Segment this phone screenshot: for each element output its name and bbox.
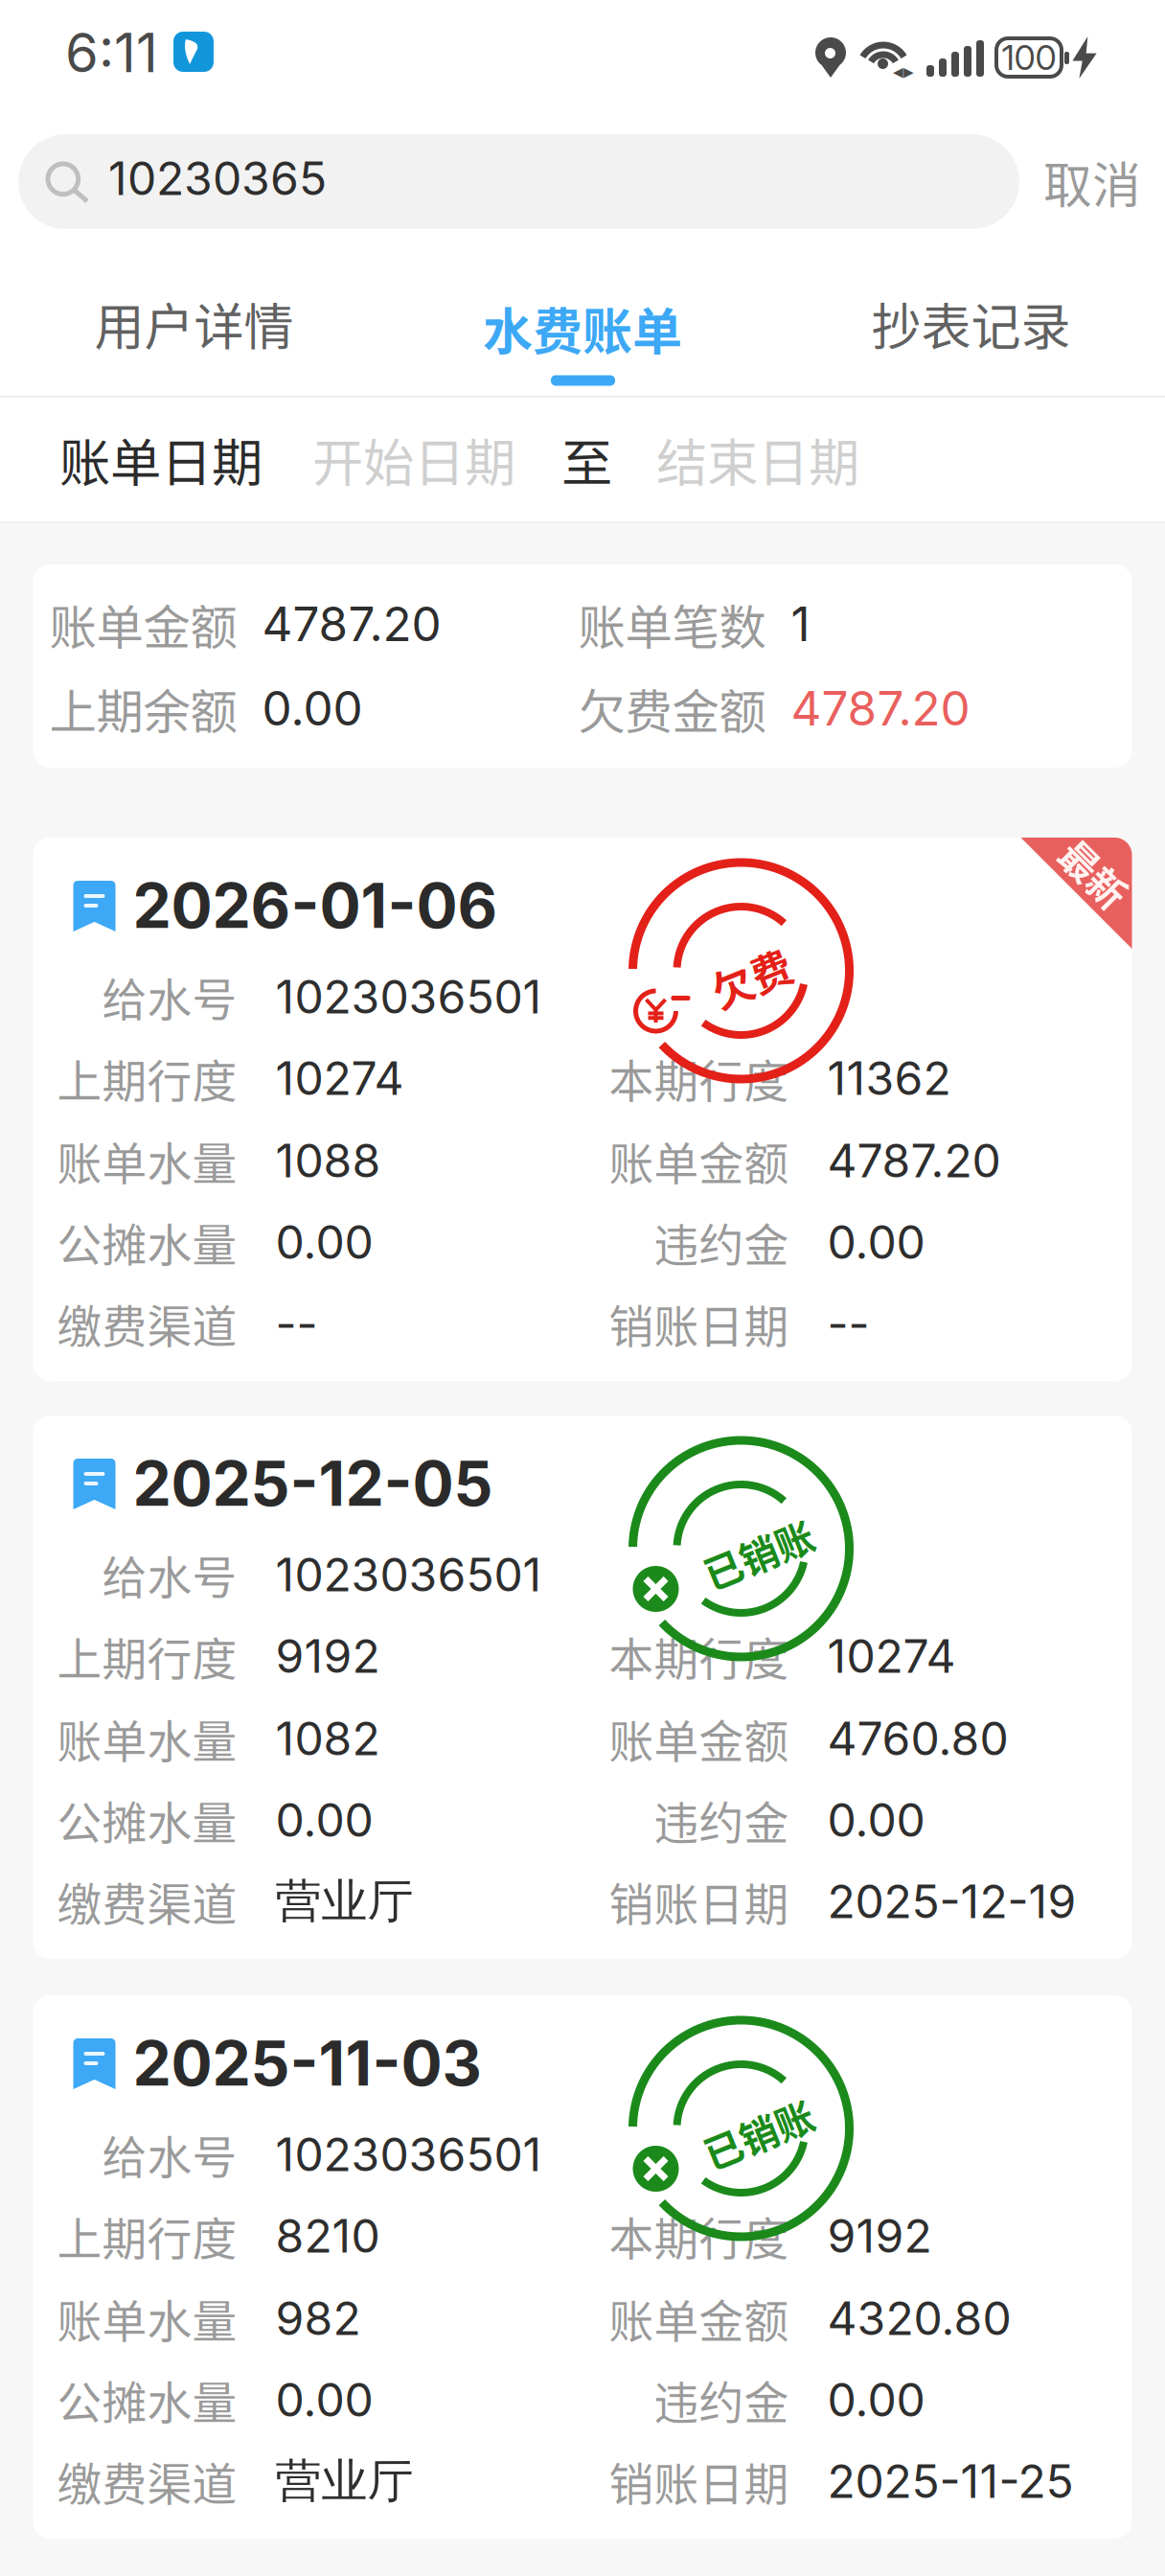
staticText: 公摊水量 — [57, 2367, 237, 2432]
staticText: 欠费 — [710, 948, 793, 1007]
staticText: 9192 — [275, 1628, 380, 1684]
staticText: 至 — [561, 423, 612, 497]
staticText: 本期行度 — [609, 2203, 789, 2268]
staticText: 0.00 — [262, 680, 363, 737]
button[interactable]: 抄表记录 — [777, 251, 1165, 396]
staticText: 0.00 — [827, 1792, 925, 1848]
staticText: 公摊水量 — [57, 1210, 237, 1274]
button[interactable]: 用户详情 — [0, 251, 388, 396]
staticText: 账单金额 — [49, 590, 237, 658]
staticText: 缴费渠道 — [57, 2449, 237, 2514]
staticText: 给水号 — [102, 2122, 237, 2187]
staticText: 11362 — [827, 1050, 951, 1106]
staticText: 销账日期 — [609, 1869, 789, 1934]
staticText: 抄表记录 — [871, 287, 1071, 360]
staticText: 账单水量 — [57, 2286, 237, 2351]
staticText: 销账日期 — [609, 1291, 789, 1356]
staticText: 上期行度 — [57, 1046, 237, 1111]
staticText: 4787.20 — [791, 680, 970, 737]
staticText: 销账日期 — [609, 2449, 789, 2514]
staticText: 982 — [275, 2290, 361, 2346]
staticText: 6:11 — [65, 20, 158, 85]
staticText: 用户详情 — [94, 287, 294, 360]
button[interactable]: 10230365 — [18, 134, 1019, 229]
staticText: 1023036501 — [275, 1547, 542, 1602]
staticText: 给水号 — [102, 964, 237, 1029]
button[interactable]: 结束日期 — [612, 423, 859, 497]
staticText: 缴费渠道 — [57, 1869, 237, 1934]
staticText: 100 — [1002, 37, 1056, 78]
staticText: 缴费渠道 — [57, 1291, 237, 1356]
staticText: 2025-11-25 — [827, 2453, 1074, 2509]
staticText: 公摊水量 — [57, 1787, 237, 1852]
staticText: 2026-01-06 — [133, 869, 498, 943]
staticText: 8210 — [275, 2208, 380, 2264]
staticText: 违约金 — [654, 2367, 789, 2432]
staticText: 上期余额 — [49, 674, 237, 742]
staticText: 0.00 — [827, 2372, 925, 2428]
staticText: 违约金 — [654, 1210, 789, 1274]
staticText: 给水号 — [102, 1542, 237, 1607]
staticText: 4787.20 — [827, 1133, 1001, 1188]
staticText: 已销账 — [701, 2105, 816, 2161]
staticText: 上期行度 — [57, 1624, 237, 1688]
staticText: 2025-11-03 — [133, 2026, 481, 2100]
button[interactable]: 水费账单 — [388, 251, 777, 396]
staticText: 0.00 — [275, 2372, 373, 2428]
staticText: 上期行度 — [57, 2203, 237, 2268]
staticText: 1088 — [275, 1133, 381, 1188]
staticText: ◂▸ — [893, 59, 914, 83]
staticText: 取消 — [1043, 147, 1141, 217]
staticText: 欠费金额 — [578, 674, 766, 742]
staticText: 营业厅 — [275, 2452, 413, 2510]
staticText: 2025-12-19 — [827, 1874, 1076, 1929]
staticText: 1023036501 — [275, 969, 542, 1025]
staticText: 4320.80 — [827, 2290, 1011, 2346]
staticText: 1 — [791, 595, 810, 653]
button[interactable]: 开始日期 — [263, 423, 515, 497]
staticText: -- — [827, 1296, 869, 1351]
staticText: 账单金额 — [609, 1128, 789, 1193]
staticText: 9192 — [827, 2208, 932, 2264]
staticText: 10274 — [827, 1628, 956, 1684]
staticText: 1082 — [275, 1711, 380, 1766]
staticText: 本期行度 — [609, 1046, 789, 1111]
staticText: 违约金 — [654, 1787, 789, 1852]
staticText: 账单金额 — [609, 2286, 789, 2351]
staticText: 1023036501 — [275, 2127, 542, 2182]
staticText: 水费账单 — [483, 292, 682, 364]
staticText: 0.00 — [275, 1792, 373, 1848]
staticText: 营业厅 — [275, 1872, 413, 1930]
staticText: 结束日期 — [656, 423, 859, 497]
staticText: 账单金额 — [609, 1706, 789, 1771]
staticText: 账单水量 — [57, 1706, 237, 1771]
staticText: 开始日期 — [312, 423, 515, 497]
staticText: 已销账 — [701, 1526, 816, 1581]
staticText: 4760.80 — [827, 1711, 1008, 1766]
staticText: 账单水量 — [57, 1128, 237, 1193]
staticText: 0.00 — [275, 1214, 373, 1270]
staticText: -- — [275, 1296, 318, 1351]
staticText: 2025-12-05 — [133, 1446, 493, 1521]
staticText: 最新 — [1056, 845, 1133, 901]
button[interactable]: 取消 — [1044, 153, 1140, 211]
staticText: 本期行度 — [609, 1624, 789, 1688]
staticText: 10274 — [275, 1050, 404, 1106]
staticText: 账单日期 — [59, 423, 263, 497]
staticText: 4787.20 — [262, 595, 441, 653]
staticText: 10230365 — [108, 150, 327, 206]
staticText: 账单笔数 — [578, 590, 766, 658]
staticText: 0.00 — [827, 1214, 925, 1270]
